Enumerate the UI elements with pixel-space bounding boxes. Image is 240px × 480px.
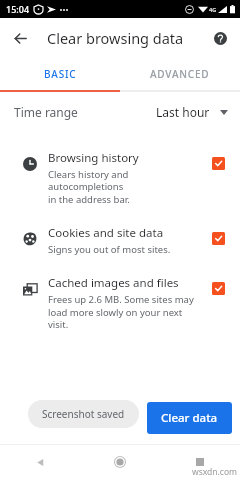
staticText: Clear data xyxy=(161,410,218,426)
staticText: Screenshot saved xyxy=(42,407,125,421)
button[interactable]: Toggle Cookies and site data xyxy=(208,228,228,248)
staticText: load more slowly on your next visit. xyxy=(48,306,202,331)
staticText: 15:04 xyxy=(6,3,30,15)
button[interactable]: Toggle Browsing history xyxy=(208,153,228,173)
button[interactable]: Home xyxy=(80,444,160,480)
staticText: Frees up 2.6 MB. Some sites may xyxy=(48,293,194,306)
button[interactable]: Time range xyxy=(0,92,240,132)
button[interactable]: Recent apps xyxy=(160,444,240,480)
button[interactable]: Browsing history xyxy=(0,140,240,215)
staticText: Clears history and autocompletions xyxy=(48,168,202,193)
staticText: Browsing history xyxy=(48,150,139,166)
staticText: ADVANCED xyxy=(150,67,210,81)
button[interactable]: Toggle Cached images and files xyxy=(208,278,228,298)
button[interactable]: BASIC xyxy=(0,58,120,90)
staticText: Cached images and files xyxy=(48,275,179,291)
staticText: wsxdn.com xyxy=(192,466,238,478)
button[interactable]: Clear data xyxy=(147,402,232,434)
button[interactable]: Back xyxy=(0,444,80,480)
staticText: in the address bar. xyxy=(48,193,130,206)
staticText: Clear browsing data xyxy=(47,28,184,48)
staticText: Signs you out of most sites. xyxy=(48,243,171,256)
button[interactable]: Cookies and site data xyxy=(0,215,240,265)
staticText: 4G xyxy=(209,6,217,13)
button[interactable]: Cached images and files xyxy=(0,265,240,340)
button[interactable]: Help xyxy=(205,23,235,53)
button[interactable]: ADVANCED xyxy=(120,58,240,90)
staticText: BASIC xyxy=(44,67,77,81)
staticText: Time range xyxy=(14,104,78,120)
staticText: Cookies and site data xyxy=(48,225,164,241)
button[interactable]: Back xyxy=(4,22,36,54)
staticText: Last hour xyxy=(156,104,210,120)
